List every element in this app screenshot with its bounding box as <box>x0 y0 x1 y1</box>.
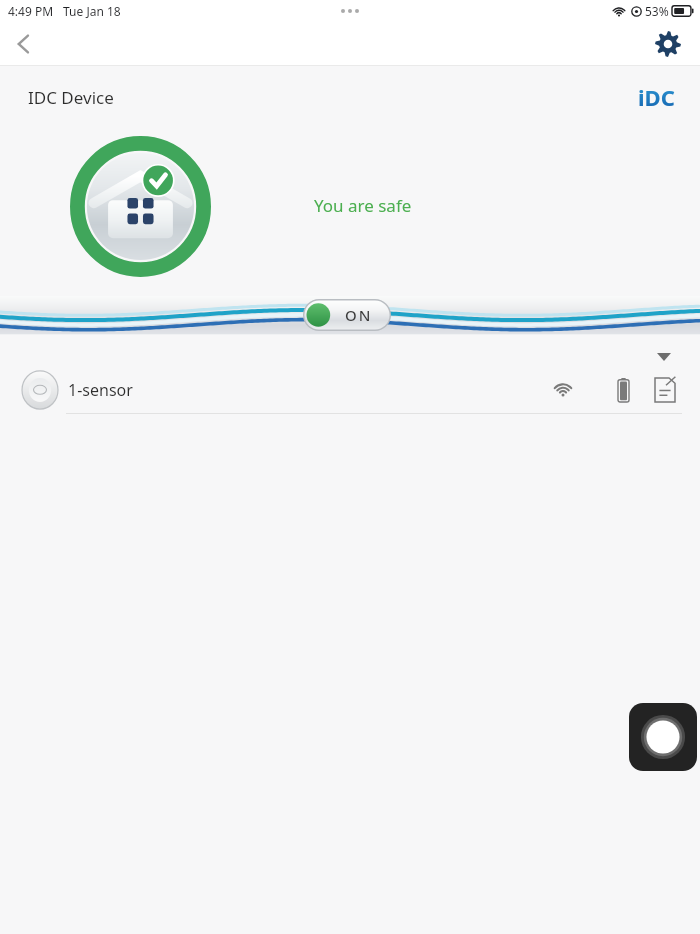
button[interactable]: Camera <box>629 703 697 771</box>
staticText: 53% <box>645 3 669 19</box>
button[interactable]: Edit sensor <box>648 373 682 407</box>
button[interactable]: Battery level <box>608 375 638 405</box>
staticText: IDC Device <box>28 86 114 109</box>
button[interactable]: Signal strength <box>546 373 580 407</box>
button[interactable]: 1-sensor <box>0 367 700 414</box>
button[interactable]: Settings <box>646 22 690 66</box>
staticText: iDC <box>638 82 675 112</box>
button[interactable]: Expand list <box>652 347 676 367</box>
staticText: 4:49 PM <box>8 3 54 19</box>
staticText: Tue Jan 18 <box>63 3 121 19</box>
staticText: ON <box>345 305 373 325</box>
button[interactable]: Back <box>0 22 48 66</box>
button[interactable]: System armed toggle, ON <box>303 299 391 331</box>
staticText: 1-sensor <box>68 379 133 401</box>
staticText: You are safe <box>314 194 412 217</box>
button[interactable]: Home status, armed <box>70 136 211 277</box>
